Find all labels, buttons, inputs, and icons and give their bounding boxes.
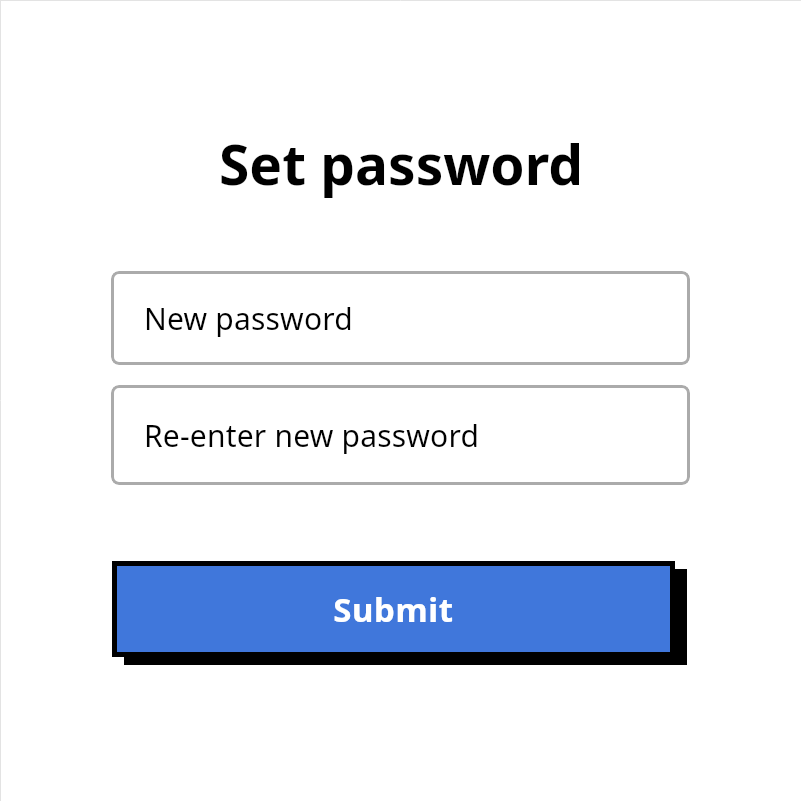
- staticText: Submit: [333, 587, 454, 632]
- button[interactable]: New password: [111, 271, 690, 365]
- staticText: Re-enter new password: [144, 415, 480, 456]
- button[interactable]: Submit: [117, 566, 670, 652]
- staticText: New password: [144, 298, 353, 339]
- button[interactable]: Re-enter new password: [111, 385, 690, 485]
- staticText: Set password: [219, 126, 583, 201]
